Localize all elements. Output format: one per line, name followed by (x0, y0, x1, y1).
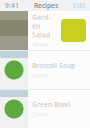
staticText: Garden Salad (32, 13, 50, 39)
staticText: Recipes (34, 1, 58, 10)
staticText: 25 min (32, 72, 48, 79)
staticText: 25 min (32, 111, 48, 118)
staticText: 30 min (32, 41, 48, 48)
staticText: 9:41 (5, 1, 19, 10)
staticText: Broccoli Soup (32, 61, 75, 70)
staticText: Edit (73, 1, 85, 10)
staticText: Green Bowl (32, 100, 70, 109)
